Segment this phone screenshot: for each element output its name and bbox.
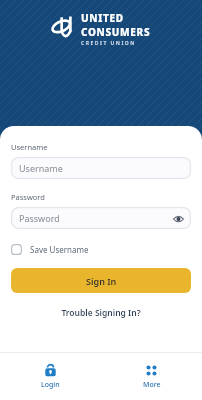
- staticText: Password: [11, 192, 45, 202]
- button[interactable]: Username: [11, 157, 191, 179]
- button[interactable]: Login: [0, 353, 101, 400]
- staticText: Username: [11, 142, 48, 152]
- button[interactable]: Password: [11, 207, 191, 229]
- button[interactable]: Trouble Signing In?: [11, 307, 191, 319]
- button[interactable]: Show password: [171, 211, 186, 226]
- staticText: Trouble Signing In?: [61, 307, 141, 319]
- staticText: Login: [41, 380, 60, 390]
- button[interactable]: Sign In: [11, 268, 191, 293]
- staticText: Save Username: [30, 244, 89, 255]
- staticText: CONSUMERS: [81, 25, 151, 39]
- staticText: CREDIT UNION: [81, 40, 136, 47]
- staticText: More: [143, 380, 161, 390]
- staticText: UNITED: [81, 11, 124, 25]
- button[interactable]: Save Username: [11, 242, 89, 257]
- staticText: Password: [19, 212, 60, 224]
- button[interactable]: More: [101, 353, 202, 400]
- staticText: Sign In: [86, 275, 117, 287]
- staticText: Username: [19, 162, 63, 174]
